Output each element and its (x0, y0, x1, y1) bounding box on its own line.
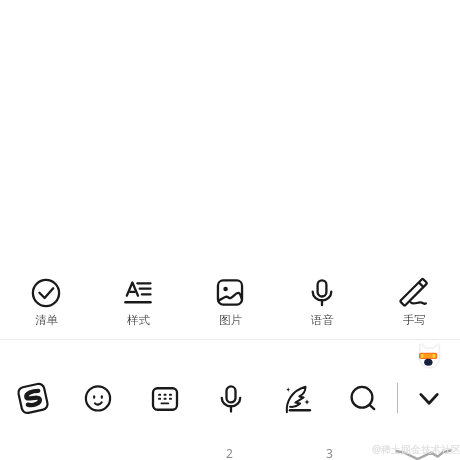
button[interactable]: 图片 (184, 265, 276, 330)
staticText: 手写 (403, 313, 426, 327)
button[interactable]: Sogou input method (11, 377, 55, 421)
staticText: 图片 (219, 313, 242, 327)
staticText: 3 (326, 445, 333, 460)
button[interactable]: Mascot (417, 343, 442, 368)
button[interactable]: Emoji (76, 377, 120, 421)
button[interactable]: Voice input (209, 377, 253, 421)
button[interactable]: 手写 (368, 265, 460, 330)
staticText: 清单 (35, 313, 58, 327)
staticText: 样式 (127, 313, 150, 327)
staticText: @稀土掘金技术社区 (372, 442, 460, 456)
button[interactable]: Hide keyboard (407, 377, 451, 421)
button[interactable]: Search (340, 377, 384, 421)
button[interactable]: AI writing assistant (276, 377, 320, 421)
button[interactable]: 清单 (0, 265, 92, 330)
button[interactable]: 样式 (92, 265, 184, 330)
staticText: 2 (226, 445, 233, 460)
button[interactable]: 语音 (276, 265, 368, 330)
button[interactable]: Keyboard layout (143, 377, 187, 421)
staticText: 语音 (311, 313, 334, 327)
